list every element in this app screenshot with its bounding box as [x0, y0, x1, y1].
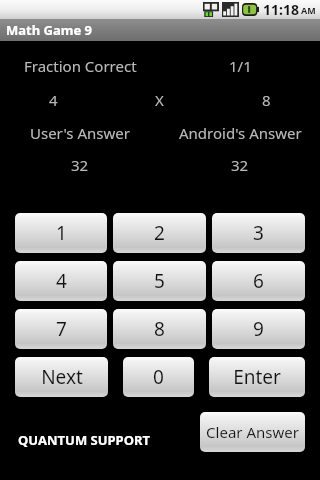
staticText: Enter: [233, 364, 281, 390]
staticText: Fraction Correct: [24, 56, 137, 76]
staticText: 8: [154, 316, 165, 342]
staticText: 9: [253, 316, 264, 342]
button[interactable]: Enter: [209, 357, 305, 397]
staticText: QUANTUM SUPPORT: [18, 431, 150, 449]
staticText: 5: [154, 268, 165, 294]
staticText: 4: [56, 268, 67, 294]
staticText: 2: [154, 220, 165, 246]
staticText: 8: [262, 90, 271, 110]
staticText: 32: [71, 155, 89, 175]
other: Signal strength: [222, 2, 239, 17]
other: 3G data: [203, 2, 219, 17]
button[interactable]: 2: [113, 213, 206, 253]
button[interactable]: 4: [15, 261, 107, 301]
staticText: X: [155, 90, 164, 110]
staticText: AM: [301, 4, 316, 16]
staticText: Next: [41, 364, 83, 390]
staticText: 11:18: [263, 0, 299, 19]
staticText: 3: [253, 220, 264, 246]
staticText: 1/1: [229, 56, 252, 76]
button[interactable]: 6: [212, 261, 305, 301]
button[interactable]: Clear Answer: [200, 412, 305, 452]
staticText: User's Answer: [30, 123, 130, 143]
button[interactable]: 1: [15, 213, 107, 253]
button[interactable]: 9: [212, 309, 305, 349]
button[interactable]: 7: [15, 309, 107, 349]
button[interactable]: 5: [113, 261, 206, 301]
button[interactable]: Next: [15, 357, 108, 397]
staticText: Android's Answer: [179, 123, 302, 143]
staticText: 7: [56, 316, 67, 342]
button[interactable]: 3: [212, 213, 305, 253]
staticText: 1: [56, 220, 67, 246]
staticText: 6: [253, 268, 264, 294]
staticText: 4: [49, 90, 58, 110]
staticText: Clear Answer: [206, 422, 299, 442]
staticText: 0: [153, 364, 164, 390]
button[interactable]: 8: [113, 309, 206, 349]
button[interactable]: 0: [123, 357, 194, 397]
other: Battery: [242, 3, 259, 16]
staticText: 32: [231, 155, 249, 175]
staticText: Math Game 9: [6, 21, 92, 39]
